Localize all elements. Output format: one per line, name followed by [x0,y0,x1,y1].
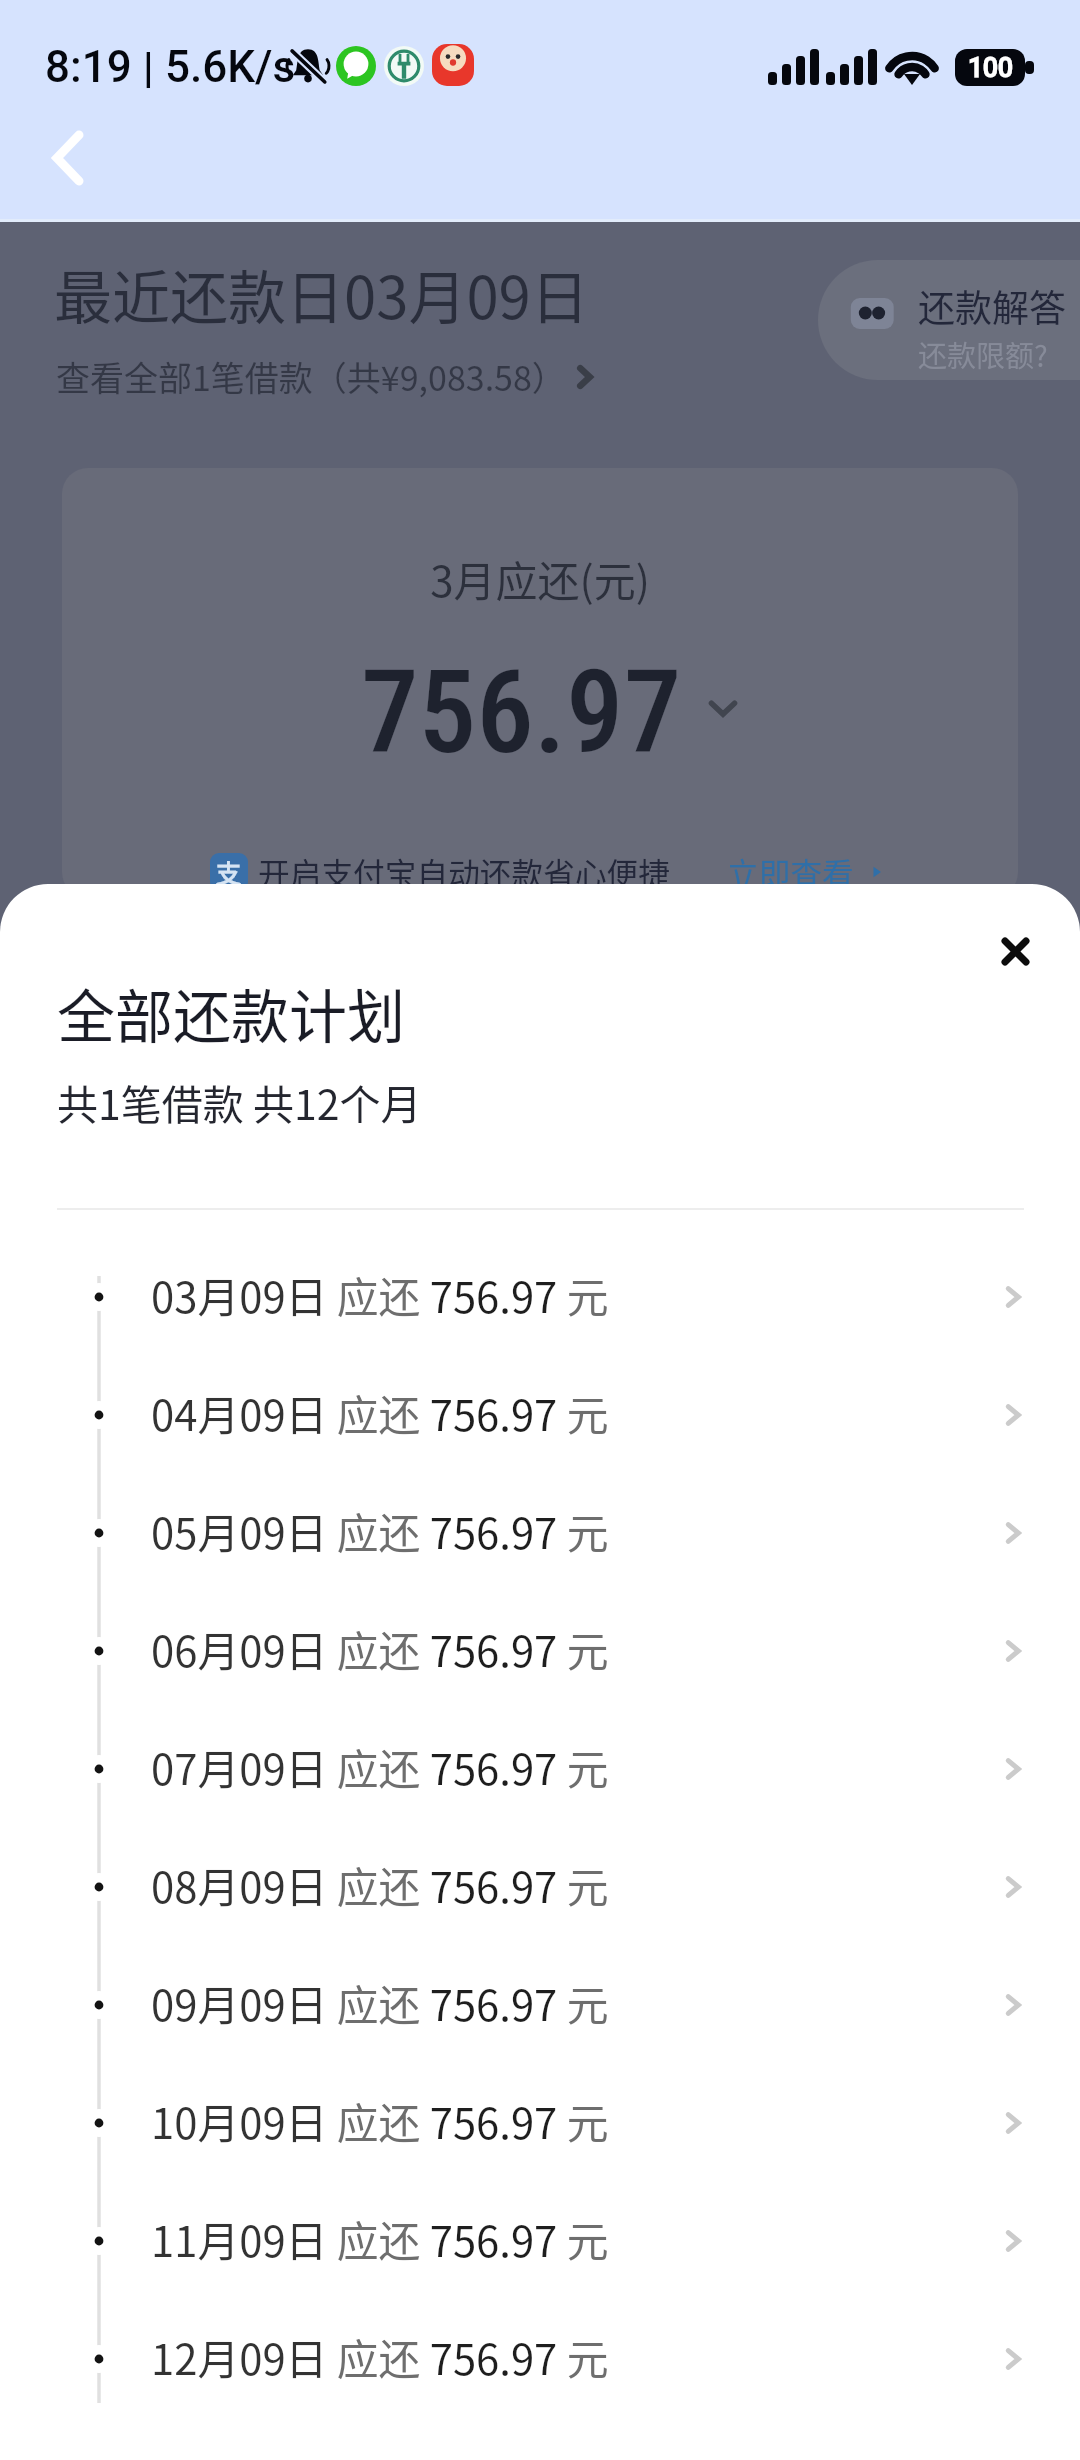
button[interactable]: 09月09日 应还 756.97 元 [0,1946,1080,2064]
button[interactable]: 查看全部1笔借款（共¥9,083.58） [56,352,602,401]
staticText: 09月09日 应还 756.97 元 [151,1973,609,2034]
staticText: 10月09日 应还 756.97 元 [151,2091,609,2152]
staticText: 756.97 [361,645,682,780]
staticText: 5.6K/s [165,41,296,93]
button[interactable]: Close [977,913,1053,989]
staticText: 支 [216,854,242,890]
staticText: 100 [968,52,1013,84]
staticText: 12月09日 应还 756.97 元 [151,2327,609,2388]
button[interactable]: 10月09日 应还 756.97 元 [0,2064,1080,2182]
staticText: 全部还款计划 [57,971,406,1055]
staticText: 06月09日 应还 756.97 元 [151,1619,609,1680]
staticText: 还款限额? [918,333,1048,375]
staticText: 3月应还(元) [62,548,1018,609]
staticText: 立即查看 [727,849,854,895]
button[interactable]: 还款解答 [818,260,1080,380]
button[interactable]: 06月09日 应还 756.97 元 [0,1592,1080,1710]
staticText: 07月09日 应还 756.97 元 [151,1737,609,1798]
button[interactable]: 立即查看 [727,849,888,895]
staticText: 03月09日 应还 756.97 元 [151,1265,609,1326]
staticText: 还款解答 [918,279,1066,333]
staticText: 05月09日 应还 756.97 元 [151,1501,609,1562]
button[interactable]: 04月09日 应还 756.97 元 [0,1356,1080,1474]
staticText: 共1笔借款 共12个月 [57,1072,422,1131]
staticText: 08月09日 应还 756.97 元 [151,1855,609,1916]
button[interactable]: 07月09日 应还 756.97 元 [0,1710,1080,1828]
button[interactable]: 12月09日 应还 756.97 元 [0,2300,1080,2418]
button[interactable]: 08月09日 应还 756.97 元 [0,1828,1080,1946]
staticText: 查看全部1笔借款（共¥9,083.58） [56,352,566,401]
button[interactable]: 03月09日 应还 756.97 元 [0,1238,1080,1356]
staticText: 8:19 [45,41,132,93]
staticText: 最近还款日03月09日 [54,252,589,336]
staticText: 开启支付宝自动还款省心便捷 [258,849,670,895]
staticText: | [143,43,154,92]
button[interactable]: 05月09日 应还 756.97 元 [0,1474,1080,1592]
staticText: 11月09日 应还 756.97 元 [151,2209,609,2270]
button[interactable]: 11月09日 应还 756.97 元 [0,2182,1080,2300]
button[interactable]: Back [32,124,104,192]
staticText: 04月09日 应还 756.97 元 [151,1383,609,1444]
